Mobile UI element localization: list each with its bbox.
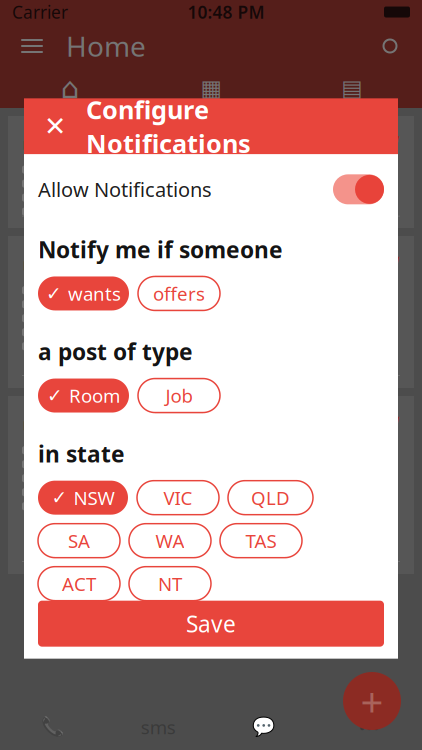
button[interactable]: New post (343, 672, 401, 730)
button[interactable]: Menu (14, 26, 50, 66)
staticText: ✕ (44, 111, 66, 141)
button[interactable]: Close (42, 113, 68, 139)
button[interactable]: NT (129, 567, 211, 601)
button[interactable]: Search (372, 26, 408, 66)
staticText: offers (153, 281, 205, 306)
button[interactable]: VIC (137, 481, 219, 515)
button[interactable]: QLD (228, 481, 313, 515)
button[interactable]: Guide tab (281, 68, 422, 108)
staticText: + (360, 674, 383, 727)
staticText: Configure Notifications (86, 93, 251, 160)
staticText: SA (68, 528, 90, 553)
staticText: Job (165, 383, 192, 408)
staticText: NEW (367, 411, 400, 431)
staticText: ••• (359, 715, 380, 739)
staticText: wants (68, 281, 121, 306)
staticText: Save (186, 609, 236, 639)
staticText: ✓ (46, 283, 62, 304)
staticText: NEW (367, 251, 400, 271)
staticText: NT (158, 571, 182, 596)
staticText: NSW (73, 485, 114, 510)
staticText: 10:48 PM (187, 0, 264, 23)
staticText: ▦ (200, 75, 221, 101)
staticText: TAS (245, 528, 276, 553)
staticText: Carrier (12, 0, 68, 23)
staticText: Home (66, 27, 146, 65)
button[interactable]: Allow Notifications toggle (333, 174, 384, 204)
button[interactable]: TAS (220, 524, 302, 558)
staticText: in state (38, 439, 125, 469)
staticText: Room (69, 383, 120, 408)
staticText: Allow Notifications (38, 176, 212, 203)
button[interactable]: Job (138, 379, 220, 413)
button[interactable]: More (316, 704, 422, 750)
button[interactable]: Message (211, 704, 316, 750)
staticText: NEW (367, 131, 400, 150)
button[interactable]: ✓ (38, 276, 129, 310)
button[interactable]: SA (38, 524, 120, 558)
button[interactable]: offers (138, 276, 220, 310)
button[interactable]: WA (129, 524, 211, 558)
staticText: sms (141, 715, 176, 739)
staticText: ▤ (341, 75, 362, 101)
button[interactable]: ✓ (38, 481, 128, 515)
staticText: a post of type (38, 336, 193, 366)
button[interactable]: ✓ (38, 379, 129, 413)
staticText: ⌂ (61, 71, 80, 105)
staticText: ACT (62, 571, 96, 596)
staticText: ⌂ (22, 125, 39, 156)
staticText: ⌂ (22, 406, 39, 436)
staticText: QLD (251, 485, 290, 510)
staticText: ✓ (47, 385, 63, 406)
staticText: ✓ (51, 487, 67, 508)
staticText: ⌂ (22, 246, 39, 276)
button[interactable]: Home tab (0, 68, 141, 108)
staticText: WA (155, 528, 184, 553)
staticText: VIC (163, 485, 192, 510)
button[interactable]: Save (38, 601, 384, 647)
staticText: Notify me if someone (38, 234, 283, 264)
staticText: 📞 (41, 716, 64, 738)
button[interactable]: Categories tab (141, 68, 281, 108)
button[interactable]: ACT (38, 567, 120, 601)
staticText: 💬 (252, 716, 275, 738)
